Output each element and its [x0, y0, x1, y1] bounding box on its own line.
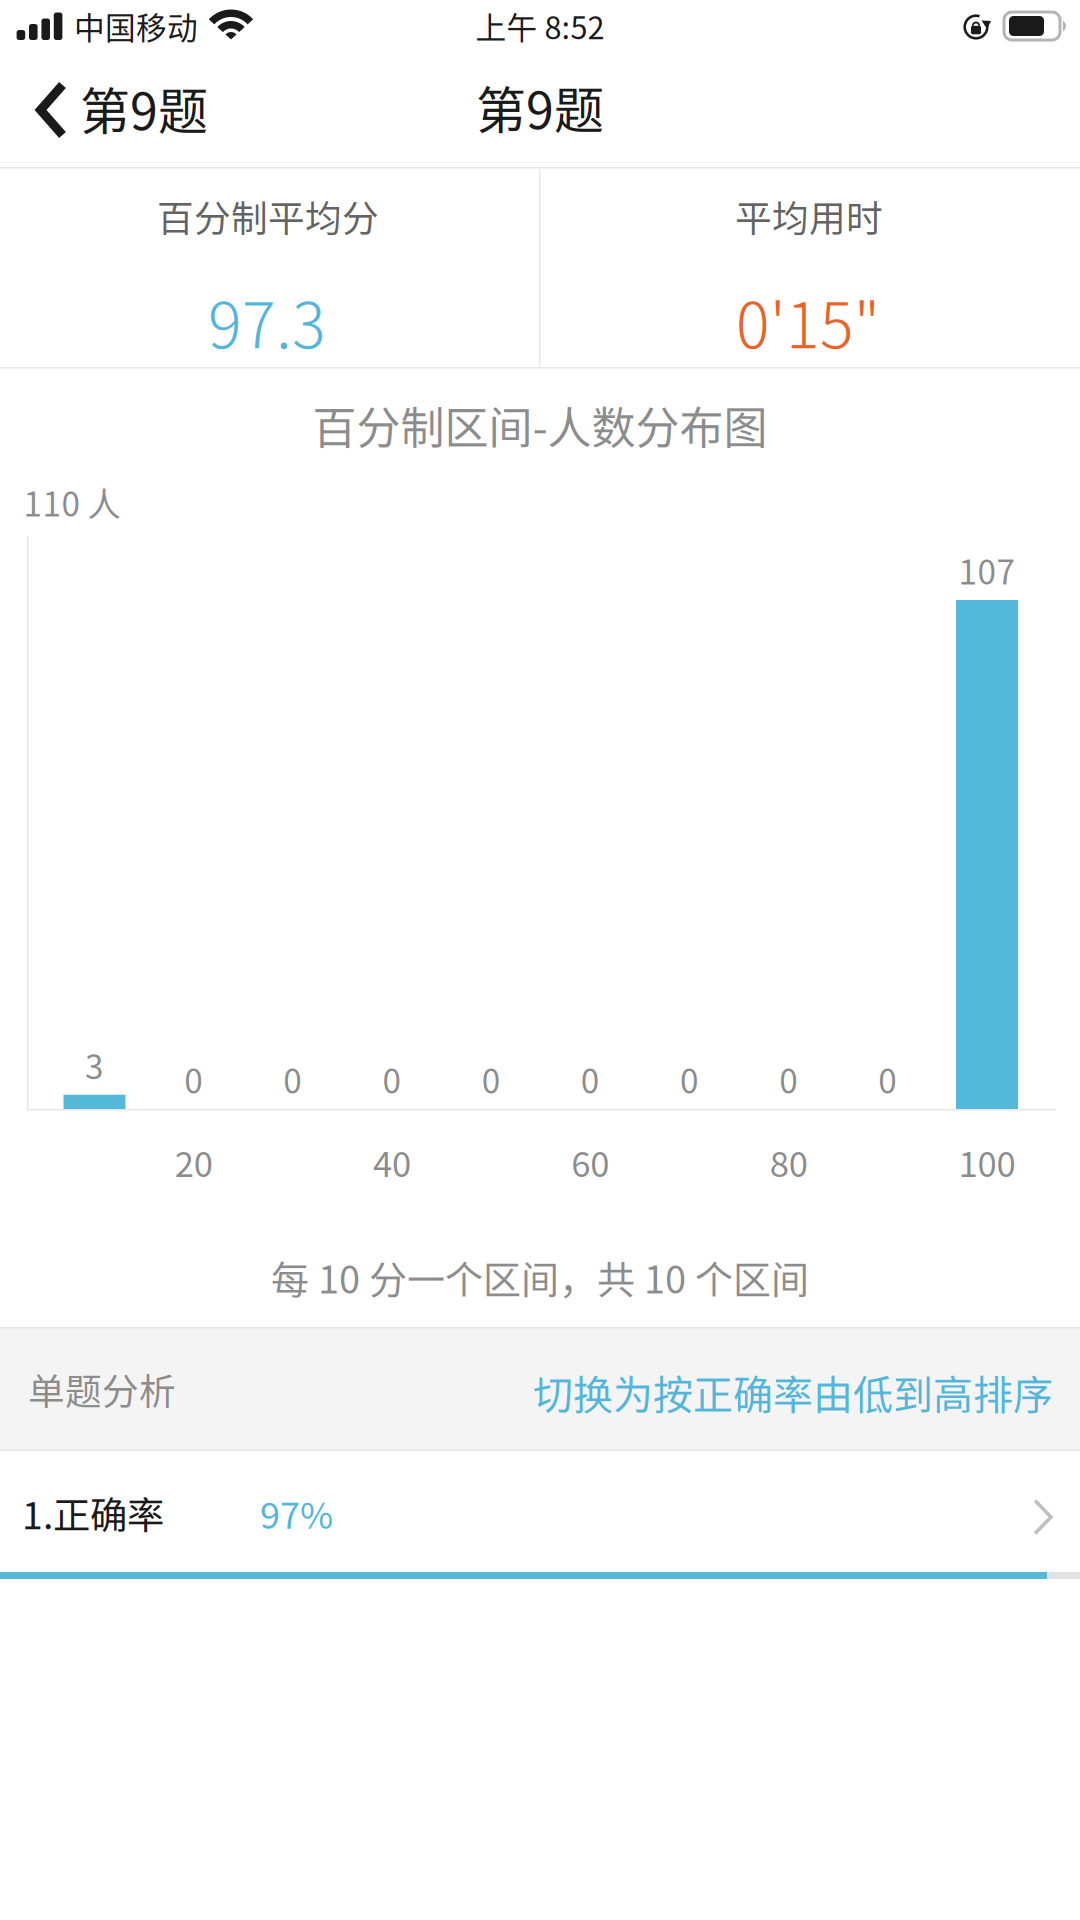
staticText: 0: [581, 1055, 600, 1103]
staticText: 百分制平均分: [157, 189, 379, 243]
staticText: 1.正确率: [22, 1486, 164, 1540]
staticText: 单题分析: [28, 1362, 176, 1416]
staticText: 中国移动: [74, 4, 198, 48]
button[interactable]: 1.正确率: [0, 1452, 1080, 1574]
staticText: 40: [373, 1137, 411, 1187]
staticText: 每 10 分一个区间，共 10 个区间: [271, 1249, 809, 1304]
staticText: 0: [283, 1055, 302, 1103]
staticText: 107: [958, 546, 1015, 594]
staticText: 0: [482, 1055, 501, 1103]
staticText: 100: [958, 1137, 1015, 1187]
staticText: 60: [571, 1137, 609, 1187]
button[interactable]: 切换为按正确率由低到高排序: [493, 1327, 1080, 1451]
staticText: 百分制区间-人数分布图: [312, 393, 767, 457]
staticText: 0: [382, 1055, 401, 1103]
staticText: 0: [878, 1055, 897, 1103]
staticText: 平均用时: [735, 189, 883, 243]
staticText: 0: [184, 1055, 203, 1103]
staticText: 97%: [260, 1487, 333, 1539]
staticText: 0'15": [736, 276, 880, 366]
staticText: 0: [680, 1055, 699, 1103]
staticText: 3: [85, 1041, 104, 1089]
button[interactable]: Back: [0, 62, 232, 154]
staticText: 97.3: [208, 276, 326, 366]
staticText: 切换为按正确率由低到高排序: [533, 1363, 1053, 1421]
staticText: 80: [770, 1137, 808, 1187]
staticText: 第9题: [80, 72, 208, 144]
staticText: 第9题: [476, 71, 604, 143]
staticText: 110 人: [23, 478, 120, 526]
staticText: 上午 8:52: [475, 4, 604, 48]
staticText: 0: [779, 1055, 798, 1103]
staticText: 20: [175, 1137, 213, 1187]
